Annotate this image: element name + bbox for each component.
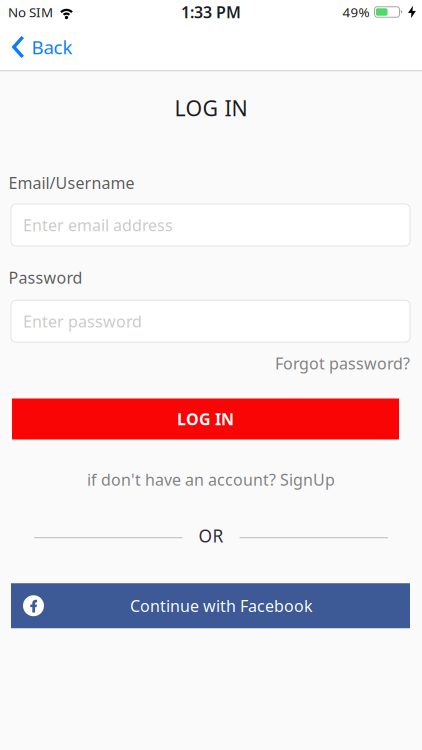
button[interactable]: Continue with Facebook (11, 583, 410, 628)
staticText: LOG IN (177, 408, 234, 430)
button[interactable]: LOG IN (12, 398, 399, 439)
staticText: Forgot password? (275, 353, 410, 374)
staticText: Continue with Facebook (130, 595, 313, 616)
staticText: LOG IN (174, 94, 247, 122)
button[interactable]: if don't have an account? SignUp (87, 469, 335, 490)
staticText: Enter email address (23, 214, 173, 236)
staticText: Enter password (23, 311, 142, 332)
button[interactable]: Back (0, 35, 72, 59)
staticText: if don't have an account? SignUp (87, 469, 335, 490)
staticText: Back (31, 35, 72, 59)
staticText: Password (8, 267, 82, 288)
staticText: 49% (342, 3, 369, 21)
staticText: OR (198, 524, 223, 547)
staticText: No SIM (8, 3, 53, 21)
staticText: 1:33 PM (181, 1, 241, 23)
button[interactable]: Forgot password? (275, 353, 410, 374)
staticText: Email/Username (8, 172, 134, 193)
